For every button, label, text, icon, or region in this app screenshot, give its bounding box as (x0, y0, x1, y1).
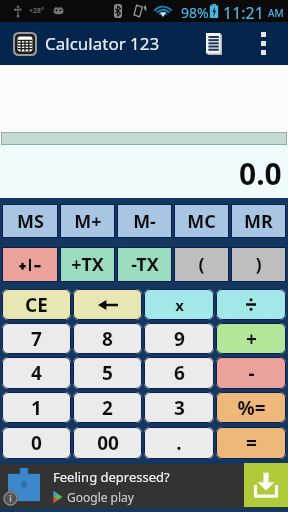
staticText: MR (244, 209, 273, 234)
staticText: M- (133, 209, 156, 234)
button[interactable]: 5 (73, 357, 142, 389)
staticText: = (246, 430, 257, 456)
button[interactable]: ← (73, 289, 142, 320)
staticText: 3 (174, 395, 185, 421)
staticText: 7 (31, 326, 42, 352)
staticText: - (248, 360, 255, 386)
staticText: +TX (71, 252, 104, 277)
staticText: MS (17, 209, 44, 234)
staticText: 11:21 (223, 2, 264, 24)
button[interactable]: 00 (73, 427, 142, 459)
button[interactable]: More options (245, 22, 281, 65)
button[interactable]: %= (216, 392, 286, 423)
button[interactable]: +TX (60, 247, 115, 282)
staticText: 0 (31, 430, 42, 456)
staticText: M+ (74, 209, 102, 234)
button[interactable]: 9 (144, 323, 214, 354)
button[interactable]: M+ (60, 204, 115, 238)
button[interactable]: 8 (73, 323, 142, 354)
staticText: . (176, 430, 182, 456)
staticText: 8 (102, 326, 113, 352)
staticText: 2 (102, 395, 113, 421)
button[interactable]: 0 (2, 427, 71, 459)
button[interactable]: M- (117, 204, 172, 238)
staticText: + (246, 326, 257, 352)
staticText: Google play (67, 489, 134, 505)
staticText: AM (268, 6, 284, 20)
button[interactable]: - (216, 357, 286, 389)
staticText: 00 (97, 430, 119, 456)
staticText: 9 (174, 326, 185, 352)
staticText: 98% (181, 3, 209, 22)
staticText: x (175, 295, 184, 315)
staticText: Feeling depressed? (53, 468, 170, 486)
button[interactable]: -TX (117, 247, 172, 282)
button[interactable]: MR (231, 204, 286, 238)
button[interactable]: x (144, 289, 214, 320)
button[interactable]: MS (2, 204, 58, 238)
staticText: ( (198, 252, 205, 277)
staticText: Calculator 123 (45, 32, 160, 55)
button[interactable]: CE (2, 289, 71, 320)
staticText: CE (25, 292, 48, 318)
staticText: 4 (31, 360, 42, 386)
staticText: +28° (29, 6, 44, 16)
button[interactable]: 6 (144, 357, 214, 389)
button[interactable]: + (216, 323, 286, 354)
button[interactable]: = (216, 427, 286, 459)
button[interactable]: 1 (2, 392, 71, 423)
button[interactable]: Install (244, 463, 288, 507)
staticText: 0.0 (239, 153, 282, 194)
button[interactable]: ) (231, 247, 286, 282)
staticText: ) (255, 252, 262, 277)
button[interactable]: History (183, 22, 245, 65)
button[interactable]: ( (174, 247, 229, 282)
button[interactable]: +|- (2, 247, 58, 282)
button[interactable]: 2 (73, 392, 142, 423)
button[interactable]: 7 (2, 323, 71, 354)
button[interactable]: 4 (2, 357, 71, 389)
staticText: 1 (31, 395, 42, 421)
staticText: 5 (102, 360, 113, 386)
staticText: -TX (131, 252, 159, 277)
button[interactable]: . (144, 427, 214, 459)
staticText: MC (187, 209, 216, 234)
button[interactable]: MC (174, 204, 229, 238)
staticText: 6 (174, 360, 185, 386)
button[interactable]: 3 (144, 392, 214, 423)
button[interactable]: ÷ (216, 289, 286, 320)
staticText: %= (237, 395, 266, 421)
